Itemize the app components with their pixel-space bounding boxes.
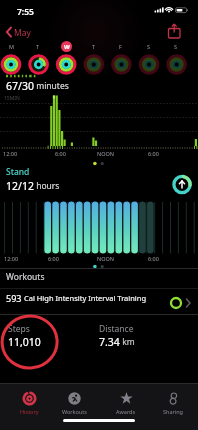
button[interactable]: History [4,391,54,425]
staticText: 7.34 [99,335,120,349]
staticText: km [120,336,135,348]
button[interactable] [166,23,184,40]
staticText: May [14,27,31,39]
staticText: 15MIN [4,95,20,102]
button[interactable] [170,172,195,197]
staticText: 6:00 [48,255,59,262]
button[interactable]: 593 [0,292,198,314]
staticText: T [92,43,96,50]
staticText: 12:00 [3,150,18,157]
staticText: W [64,43,70,51]
staticText: NOON [97,150,114,157]
staticText: 67/30 [6,79,34,93]
staticText: Distance [99,323,134,335]
staticText: Awards [116,408,136,415]
staticText: T [36,43,40,50]
button[interactable]: Workouts [49,391,99,425]
staticText: minutes [34,80,69,92]
staticText: 6:00 [55,150,66,157]
button[interactable]: Sharing [148,391,198,425]
staticText: History [20,408,39,415]
staticText: NOON [97,255,114,262]
staticText: Sharing [163,408,183,415]
staticText: Steps [8,323,30,335]
staticText: Stand [6,166,30,178]
staticText: 6:00 [148,255,159,262]
staticText: M [9,43,14,50]
staticText: 12/12 [6,179,34,193]
staticText: 7:55 [17,6,34,18]
staticText: 593 [6,292,22,304]
staticText: Cal High Intensity Interval Training [22,293,147,303]
button[interactable]: Awards [101,391,151,425]
staticText: S [147,43,151,50]
staticText: hours [34,180,60,192]
staticText: F [119,43,122,50]
staticText: S [174,43,178,50]
staticText: Workouts [62,408,87,415]
staticText: 11,010 [8,335,41,349]
staticText: Workouts [6,271,45,283]
staticText: 12:00 [4,255,19,262]
staticText: 6:00 [148,150,159,157]
button[interactable]: May [3,24,35,39]
